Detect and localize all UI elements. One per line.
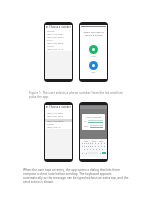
button[interactable] [97,142,100,145]
staticText: Home [47,122,54,125]
button[interactable]: Work [45,38,72,41]
button[interactable] [95,148,98,151]
staticText: (555) 345 1212 [47,47,64,50]
button[interactable]: (555) 222 8899 [45,41,72,44]
staticText: Choose a number [49,25,71,29]
button[interactable] [83,142,85,145]
staticText: (555) 345 12 [47,125,61,128]
button[interactable] [103,145,106,148]
button[interactable] [89,142,91,145]
staticText: Figure 1. The user selects a phone numbe… [29,91,128,99]
button[interactable] [91,145,94,148]
staticText: To [84,120,87,123]
button[interactable] [94,145,97,148]
button[interactable] [89,148,92,151]
button[interactable]: (555) 123 4567 [45,32,72,35]
staticText: (555) 123 4567 [47,32,64,35]
button[interactable] [85,152,87,154]
button[interactable] [81,142,83,145]
button[interactable]: To [84,120,103,123]
staticText: When the user taps an entry, the app ope… [23,168,131,184]
staticText: Choose a number [49,105,71,109]
button[interactable]: (555) 987 6543 [45,35,72,38]
button[interactable] [101,148,104,151]
button[interactable]: (555) 345 1212 [45,47,72,50]
button[interactable] [87,142,89,145]
staticText: Chat [91,55,96,58]
button[interactable] [89,145,91,148]
staticText: Mail [91,71,96,74]
button[interactable]: Mobile [45,29,72,32]
button[interactable] [83,148,86,151]
button[interactable]: Home [45,44,72,47]
button[interactable]: Enter [102,152,106,154]
staticText: (555) 222 8899 [47,119,64,122]
button[interactable] [87,145,89,148]
button[interactable]: (555) 345 12 [45,125,72,128]
button[interactable] [92,148,95,151]
button[interactable] [91,142,94,145]
button[interactable] [83,145,85,148]
staticText: Work [47,38,53,41]
button[interactable] [85,142,87,145]
button[interactable]: Text [84,125,103,128]
staticText: Text [84,125,89,128]
button[interactable] [103,142,106,145]
button[interactable] [99,152,101,154]
staticText: Select the type of the Pick Phone [82,30,105,36]
button[interactable]: (555) 987 6543 [45,114,72,117]
button[interactable]: (555) 123 4567 [45,111,72,114]
button[interactable] [100,145,103,148]
staticText: Home [47,44,54,47]
button[interactable] [81,152,84,154]
staticText: (555) 987 6543 [47,35,64,38]
staticText: (555) 123 4567 [47,111,64,114]
button[interactable]: Back [46,26,48,28]
button[interactable] [81,145,83,148]
staticText: New message [84,115,103,118]
button[interactable] [85,145,87,148]
button[interactable]: Home [45,122,72,125]
button[interactable]: Chat [88,44,99,59]
button[interactable]: (555) 222 8899 [45,119,72,122]
button[interactable] [98,148,101,151]
button[interactable] [86,148,89,151]
staticText: Mobile [47,29,55,32]
button[interactable]: Mail [88,60,99,75]
button[interactable] [100,142,103,145]
staticText: (555) 987 6543 [47,114,64,117]
button[interactable] [94,142,97,145]
staticText: (555) 222 8899 [47,41,64,44]
button[interactable] [97,145,100,148]
button[interactable]: Back [46,106,48,108]
